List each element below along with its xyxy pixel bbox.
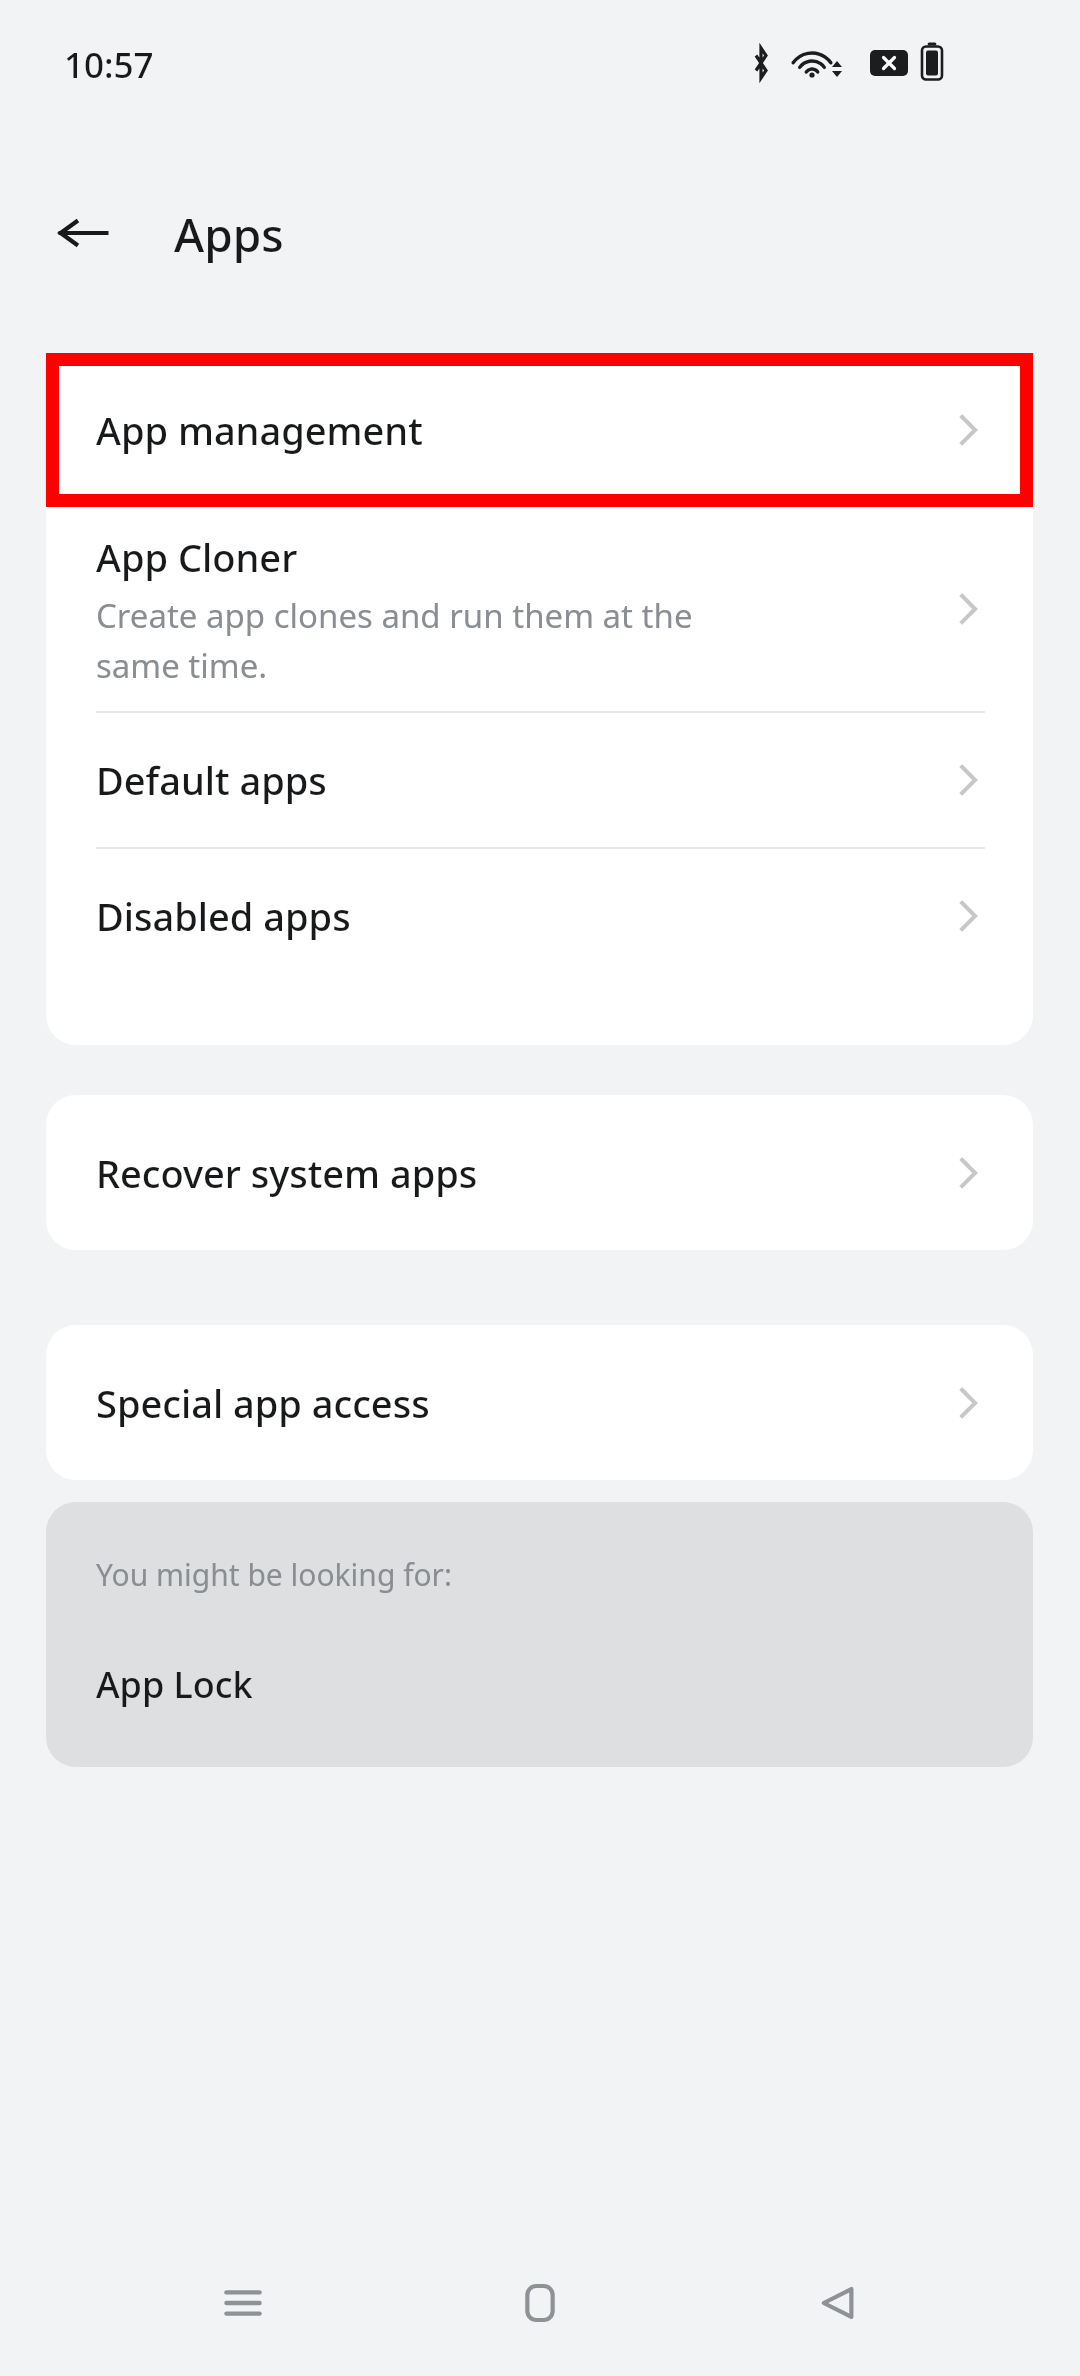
staticText: App management bbox=[96, 404, 955, 456]
staticText: Apps bbox=[174, 203, 284, 266]
button[interactable]: Special app access bbox=[46, 1325, 1033, 1480]
button[interactable]: Recover system apps bbox=[46, 1095, 1033, 1250]
staticText: You might be looking for: bbox=[96, 1554, 453, 1595]
button[interactable]: Recents bbox=[188, 2248, 298, 2358]
staticText: Special app access bbox=[96, 1377, 955, 1429]
button[interactable]: Default apps bbox=[46, 713, 1033, 847]
button[interactable]: App Cloner bbox=[46, 507, 1033, 711]
staticText: Disabled apps bbox=[96, 890, 955, 942]
button[interactable]: App management bbox=[46, 353, 1033, 507]
button[interactable]: Back bbox=[44, 194, 122, 272]
button[interactable]: Disabled apps bbox=[46, 849, 1033, 983]
staticText: Default apps bbox=[96, 754, 955, 806]
button[interactable]: Back bbox=[783, 2248, 893, 2358]
staticText: App Lock bbox=[96, 1660, 253, 1709]
staticText: Create app clones and run them at the sa… bbox=[96, 593, 693, 688]
staticText: Recover system apps bbox=[96, 1147, 955, 1199]
staticText: 10:57 bbox=[64, 41, 154, 89]
button[interactable]: App Lock bbox=[46, 1639, 1033, 1729]
staticText: App Cloner bbox=[96, 531, 298, 583]
button[interactable]: Home bbox=[485, 2248, 595, 2358]
